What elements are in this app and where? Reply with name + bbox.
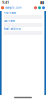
staticText: Email address — [4, 27, 21, 31]
staticText: ▮▮ — [40, 0, 44, 4]
staticText: Last name — [4, 19, 16, 23]
staticText: example.com — [5, 6, 21, 9]
staticText: First name — [4, 11, 17, 15]
staticText: 9:41 — [2, 0, 9, 5]
button[interactable]: example.com — [5, 6, 21, 9]
